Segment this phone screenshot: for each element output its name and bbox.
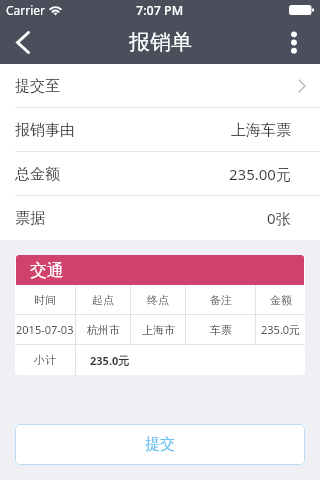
staticText: 交通 bbox=[30, 260, 64, 281]
staticText: 提交至 bbox=[15, 77, 60, 96]
staticText: 7:07 PM bbox=[136, 2, 184, 19]
staticText: 金额 bbox=[270, 293, 292, 307]
staticText: 起点 bbox=[92, 293, 114, 307]
button[interactable]: Back bbox=[0, 20, 45, 64]
staticText: 235.0元 bbox=[90, 353, 130, 368]
button[interactable]: 提交 bbox=[15, 424, 305, 465]
staticText: 终点 bbox=[147, 293, 169, 307]
staticText: 提交 bbox=[145, 435, 175, 454]
button[interactable]: 总金额 bbox=[0, 152, 320, 196]
staticText: 备注 bbox=[210, 293, 232, 307]
staticText: 上海车票 bbox=[231, 121, 291, 140]
staticText: 报销事由 bbox=[15, 121, 75, 140]
staticText: 报销单 bbox=[129, 29, 192, 55]
staticText: 小计 bbox=[34, 353, 56, 367]
staticText: 0张 bbox=[267, 208, 291, 228]
staticText: 票据 bbox=[15, 209, 45, 228]
staticText: 2015-07-03 bbox=[16, 322, 74, 337]
button[interactable]: 提交至 bbox=[0, 64, 320, 108]
button[interactable]: 报销事由 bbox=[0, 108, 320, 152]
staticText: 总金额 bbox=[15, 165, 60, 184]
staticText: 车票 bbox=[210, 323, 232, 337]
staticText: Carrier bbox=[6, 2, 46, 18]
staticText: 时间 bbox=[34, 293, 56, 307]
staticText: 上海市 bbox=[142, 323, 175, 337]
staticText: 235.00元 bbox=[229, 164, 291, 184]
staticText: 235.0元 bbox=[261, 322, 301, 337]
button[interactable]: 票据 bbox=[0, 196, 320, 240]
staticText: 杭州市 bbox=[87, 323, 120, 337]
button[interactable]: More options bbox=[268, 20, 320, 64]
